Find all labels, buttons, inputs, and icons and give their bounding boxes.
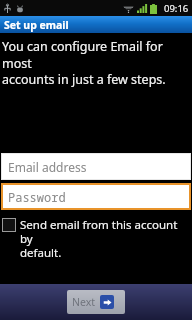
staticText: Next xyxy=(72,295,96,309)
button[interactable]: Password xyxy=(1,183,191,210)
staticText: Email address xyxy=(8,159,87,175)
staticText: You can configure Email for most account… xyxy=(2,38,188,87)
button[interactable]: Next xyxy=(67,290,125,314)
staticText: Password xyxy=(8,189,66,205)
button[interactable]: Send email from this account by default. xyxy=(0,215,192,262)
staticText: 09:16 xyxy=(164,2,189,15)
staticText: Set up email xyxy=(4,18,69,32)
other: Next xyxy=(100,295,114,309)
button[interactable]: Email address xyxy=(1,153,191,180)
staticText: Send email from this account by default. xyxy=(20,217,188,260)
